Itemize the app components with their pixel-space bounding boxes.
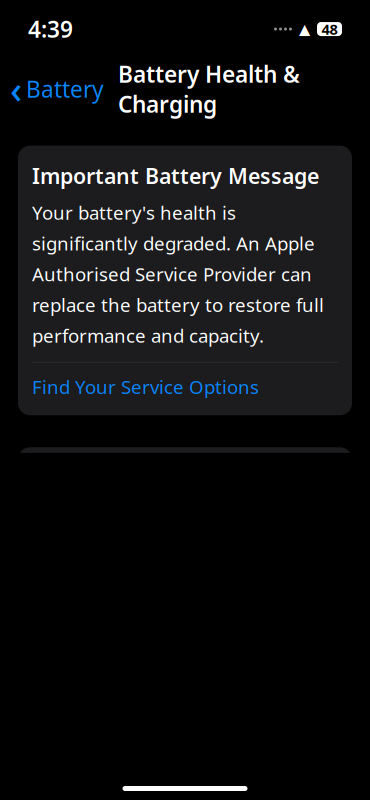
staticText: 48 — [321, 19, 337, 39]
staticText: 78% — [296, 452, 338, 480]
button[interactable]: Find Your Service Options — [32, 362, 338, 411]
staticText: Battery Health & Charging — [118, 59, 300, 119]
staticText: Built-in dynamic software and hardware s… — [32, 684, 322, 800]
staticText: ▲ — [299, 21, 310, 37]
button[interactable]: Maximum Capacity — [18, 447, 352, 485]
staticText: Find Your Service Options — [32, 374, 259, 399]
button[interactable]: ‹ — [0, 58, 104, 120]
staticText: ‹ — [10, 64, 22, 114]
staticText: Battery — [26, 74, 104, 104]
staticText: Maximum Capacity — [32, 452, 224, 480]
staticText: 4:39 — [28, 14, 73, 44]
staticText: Your battery's health is significantly d… — [32, 200, 324, 348]
staticText: Important Battery Message — [32, 162, 319, 190]
